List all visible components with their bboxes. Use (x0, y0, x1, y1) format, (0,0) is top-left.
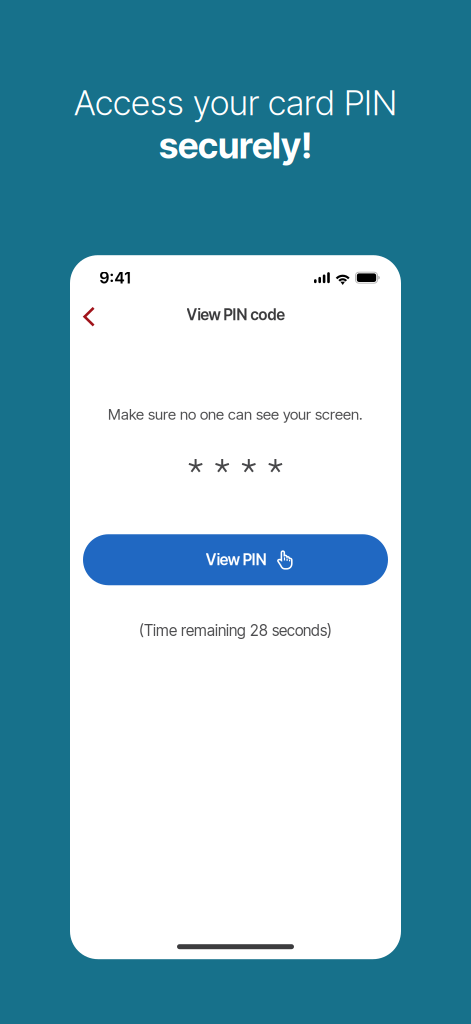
staticText: securely! (159, 124, 312, 167)
staticText: Access your card PIN (74, 82, 397, 124)
staticText: View PIN code (186, 305, 284, 324)
staticText: Make sure no one can see your screen. (108, 405, 363, 423)
staticText: View PIN (206, 550, 267, 569)
staticText: 9:41 (99, 268, 130, 287)
button[interactable]: Back (73, 300, 105, 333)
staticText: (Time remaining 28 seconds) (139, 621, 332, 640)
button[interactable]: View PIN (83, 534, 388, 585)
